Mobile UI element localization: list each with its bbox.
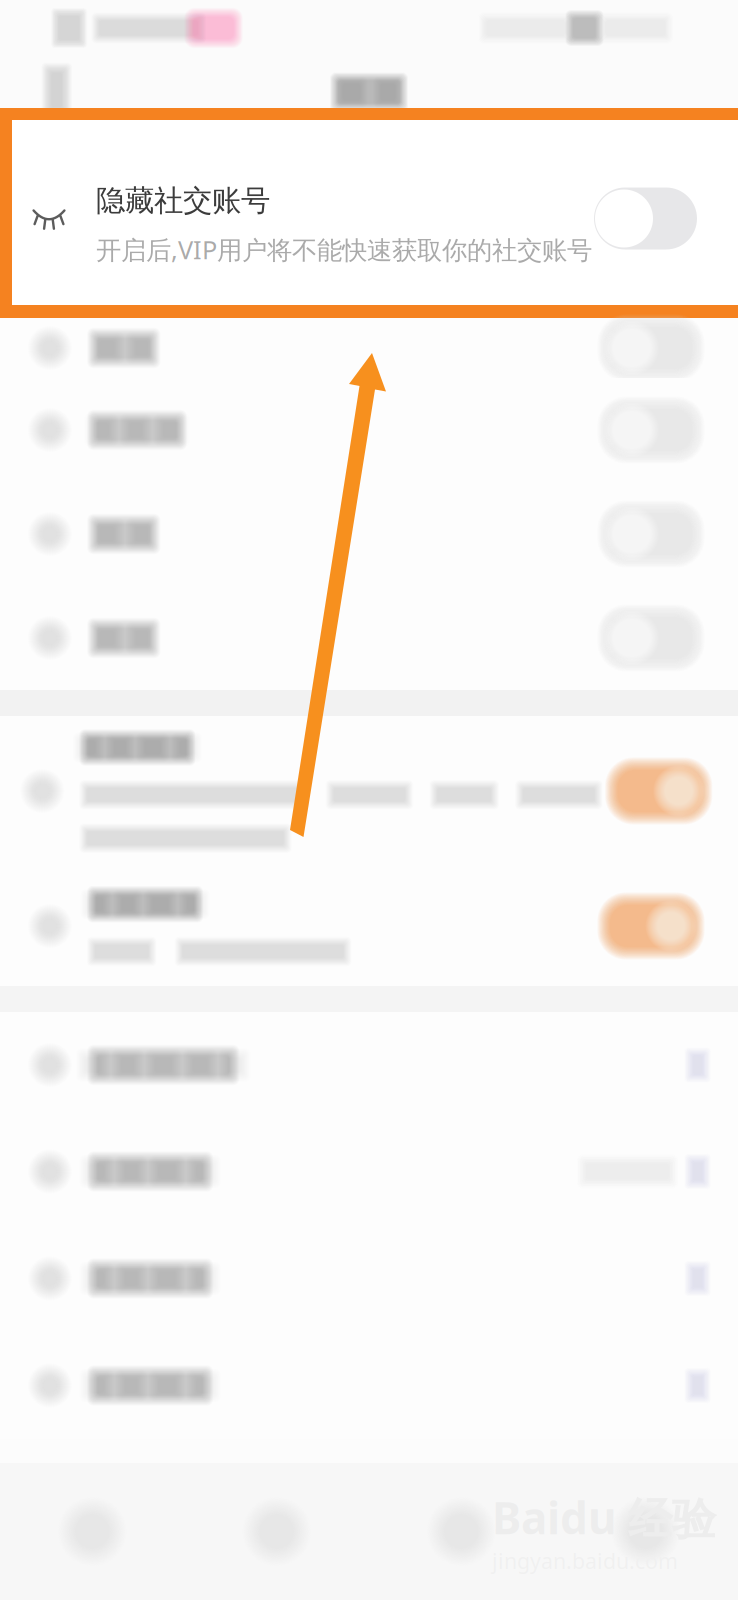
button[interactable] (0, 482, 738, 586)
button[interactable] (0, 318, 738, 378)
button[interactable] (0, 378, 738, 482)
staticText: 开启后,VIP用户将不能快速获取你的社交账号 (96, 233, 592, 266)
button[interactable]: Tab (184, 1471, 369, 1591)
button[interactable] (0, 866, 738, 986)
button[interactable] (0, 1225, 738, 1332)
button[interactable] (0, 1012, 738, 1118)
button[interactable] (0, 1332, 738, 1439)
button[interactable]: Tab (553, 1471, 738, 1591)
staticText: Baidu 经验 (492, 1488, 716, 1547)
staticText: 隐藏社交账号 (96, 183, 270, 219)
button[interactable] (0, 586, 738, 690)
button[interactable]: 隐藏社交账号 (12, 120, 738, 305)
button[interactable]: Tab (0, 1471, 184, 1591)
button[interactable]: Tab (369, 1471, 553, 1591)
button[interactable] (0, 1118, 738, 1225)
staticText: jingyan.baidu.com (492, 1547, 678, 1575)
button[interactable] (0, 716, 738, 866)
